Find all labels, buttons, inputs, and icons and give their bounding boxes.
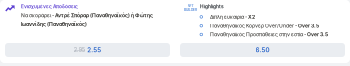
staticText: Παναθηναϊκός Κόρνερ Over/Under - Over 3.… bbox=[210, 23, 319, 29]
staticText: 2.95 bbox=[74, 47, 85, 53]
staticText: 6.50 bbox=[255, 46, 269, 54]
staticText: Παναθηναϊκός Προσπάθειες στην εστία - Ov… bbox=[210, 31, 328, 37]
button[interactable]: BET bbox=[175, 0, 350, 63]
staticText: Να σκοράρει - Αντρέ Σπόραρ (Παναθηναϊκός… bbox=[21, 12, 153, 27]
staticText: Ενισχυμένες Αποδόσεις bbox=[21, 3, 78, 9]
button[interactable]: Ενισχυμένες Αποδόσεις bbox=[0, 0, 175, 63]
staticText: BUILDER bbox=[184, 8, 197, 12]
staticText: Highlights bbox=[200, 3, 224, 9]
staticText: 2.55 bbox=[87, 46, 101, 54]
staticText: BET bbox=[187, 4, 193, 8]
staticText: Διπλή ευκαιρία - Χ2 bbox=[210, 14, 255, 20]
